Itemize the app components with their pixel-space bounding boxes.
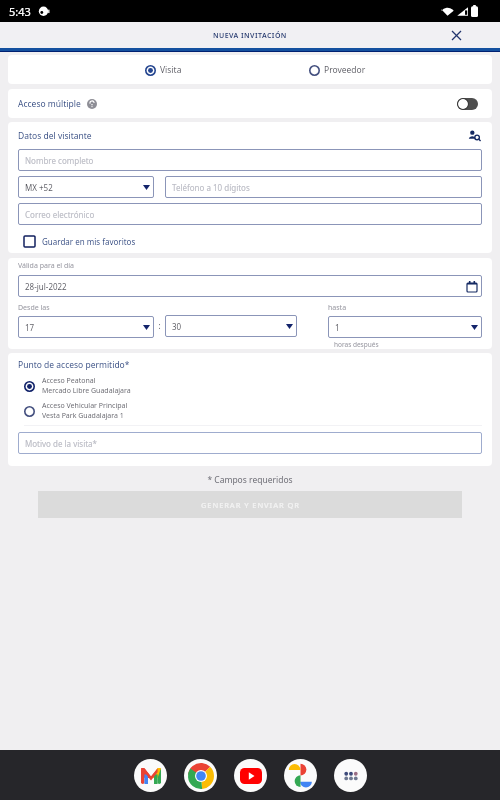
staticText: hasta: [328, 303, 347, 313]
button[interactable]: Gmail: [134, 759, 167, 792]
button[interactable]: Photos: [284, 759, 317, 792]
staticText: Punto de acceso permitido*: [18, 359, 130, 371]
staticText: 1: [335, 322, 340, 333]
staticText: Motivo de la visita*: [25, 438, 97, 449]
button[interactable]: Help: [86, 98, 97, 109]
staticText: Nombre completo: [25, 155, 94, 166]
button[interactable]: Motivo de la visita*: [25, 432, 478, 454]
staticText: Válida para el día: [18, 261, 74, 271]
button[interactable]: Nombre completo: [25, 149, 478, 171]
button[interactable]: Toggle multiple access: [457, 98, 478, 110]
staticText: 17: [25, 322, 35, 333]
button[interactable]: Visita: [145, 64, 182, 76]
button[interactable]: MX +52: [25, 176, 150, 198]
button[interactable]: Correo electrónico: [25, 203, 478, 225]
button[interactable]: Close: [448, 27, 464, 43]
button[interactable]: Chrome: [184, 759, 217, 792]
staticText: horas después: [334, 340, 379, 349]
staticText: 5:43: [9, 4, 31, 19]
button[interactable]: 30: [172, 315, 293, 337]
staticText: Mercado Libre Guadalajara: [42, 386, 131, 396]
button[interactable]: 28-jul-2022: [25, 275, 478, 297]
staticText: Guardar en mis favoritos: [42, 236, 136, 247]
staticText: Desde las: [18, 303, 50, 313]
staticText: Acceso múltiple: [18, 98, 81, 110]
staticText: Acceso Vehicular Principal: [42, 401, 128, 411]
staticText: Acceso Peatonal: [42, 376, 96, 386]
staticText: Proveedor: [324, 64, 366, 76]
button[interactable]: YouTube: [234, 759, 267, 792]
staticText: * Campos requeridos: [0, 474, 500, 486]
staticText: Visita: [160, 64, 182, 76]
staticText: NUEVA INVITACIÓN: [213, 31, 287, 41]
staticText: Correo electrónico: [25, 209, 95, 220]
staticText: MX +52: [25, 182, 53, 193]
staticText: :: [154, 320, 165, 331]
button[interactable]: 17: [25, 316, 150, 338]
button[interactable]: Guardar en mis favoritos: [18, 236, 482, 247]
button[interactable]: All apps: [334, 759, 367, 792]
staticText: Vesta Park Guadalajara 1: [42, 411, 124, 421]
staticText: Datos del visitante: [18, 130, 92, 142]
button[interactable]: 1: [335, 316, 478, 338]
staticText: Teléfono a 10 dígitos: [172, 182, 250, 193]
button[interactable]: Search visitor: [465, 127, 482, 144]
button[interactable]: Proveedor: [309, 64, 366, 76]
button[interactable]: Teléfono a 10 dígitos: [172, 176, 478, 198]
button[interactable]: Acceso Vehicular Principal: [18, 401, 482, 421]
staticText: 28-jul-2022: [25, 281, 67, 292]
button[interactable]: Acceso Peatonal: [18, 376, 482, 396]
button[interactable]: Pick date: [466, 280, 478, 292]
staticText: GENERAR Y ENVIAR QR: [201, 500, 300, 510]
staticText: 30: [172, 321, 182, 332]
